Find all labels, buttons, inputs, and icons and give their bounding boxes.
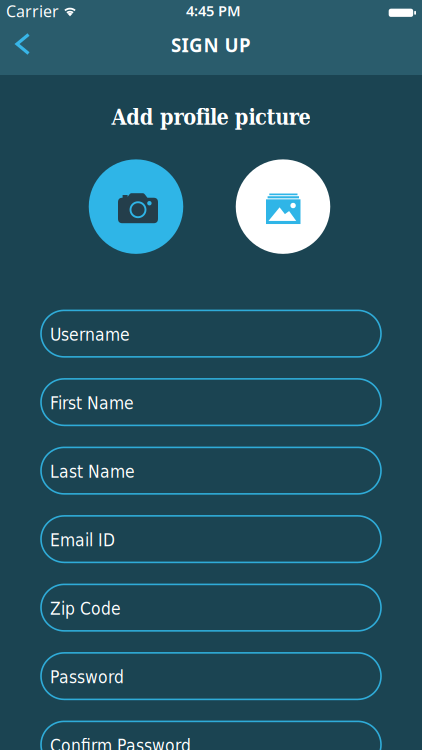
staticText: Password (50, 667, 124, 687)
staticText: Zip Code (50, 598, 121, 619)
button[interactable]: Email ID (41, 516, 381, 562)
button[interactable]: Choose from library (236, 159, 330, 254)
button[interactable]: Username (41, 310, 381, 357)
staticText: Username (50, 324, 130, 345)
button[interactable]: Last Name (41, 447, 381, 494)
button[interactable]: First Name (41, 379, 381, 425)
staticText: First Name (50, 393, 134, 413)
staticText: SIGN UP (171, 33, 251, 57)
staticText: Confirm Password (50, 735, 191, 750)
button[interactable]: Zip Code (41, 584, 381, 631)
staticText: 4:45 PM (186, 1, 241, 20)
button[interactable]: Take photo (89, 159, 183, 254)
staticText: Email ID (50, 530, 115, 550)
staticText: Add profile picture (112, 104, 310, 130)
button[interactable]: Confirm Password (41, 721, 381, 750)
staticText: Carrier (6, 0, 59, 22)
button[interactable]: Back (0, 31, 40, 66)
button[interactable]: Password (41, 653, 381, 699)
staticText: Last Name (50, 461, 135, 482)
